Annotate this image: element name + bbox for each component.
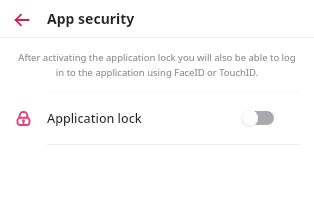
staticText: Application lock <box>47 110 142 127</box>
staticText: After activating the application lock yo… <box>14 51 300 79</box>
button[interactable]: Application lock <box>0 92 314 144</box>
button[interactable]: Back <box>8 6 36 34</box>
button[interactable]: Application lock toggle <box>240 106 282 130</box>
staticText: App security <box>47 9 135 28</box>
